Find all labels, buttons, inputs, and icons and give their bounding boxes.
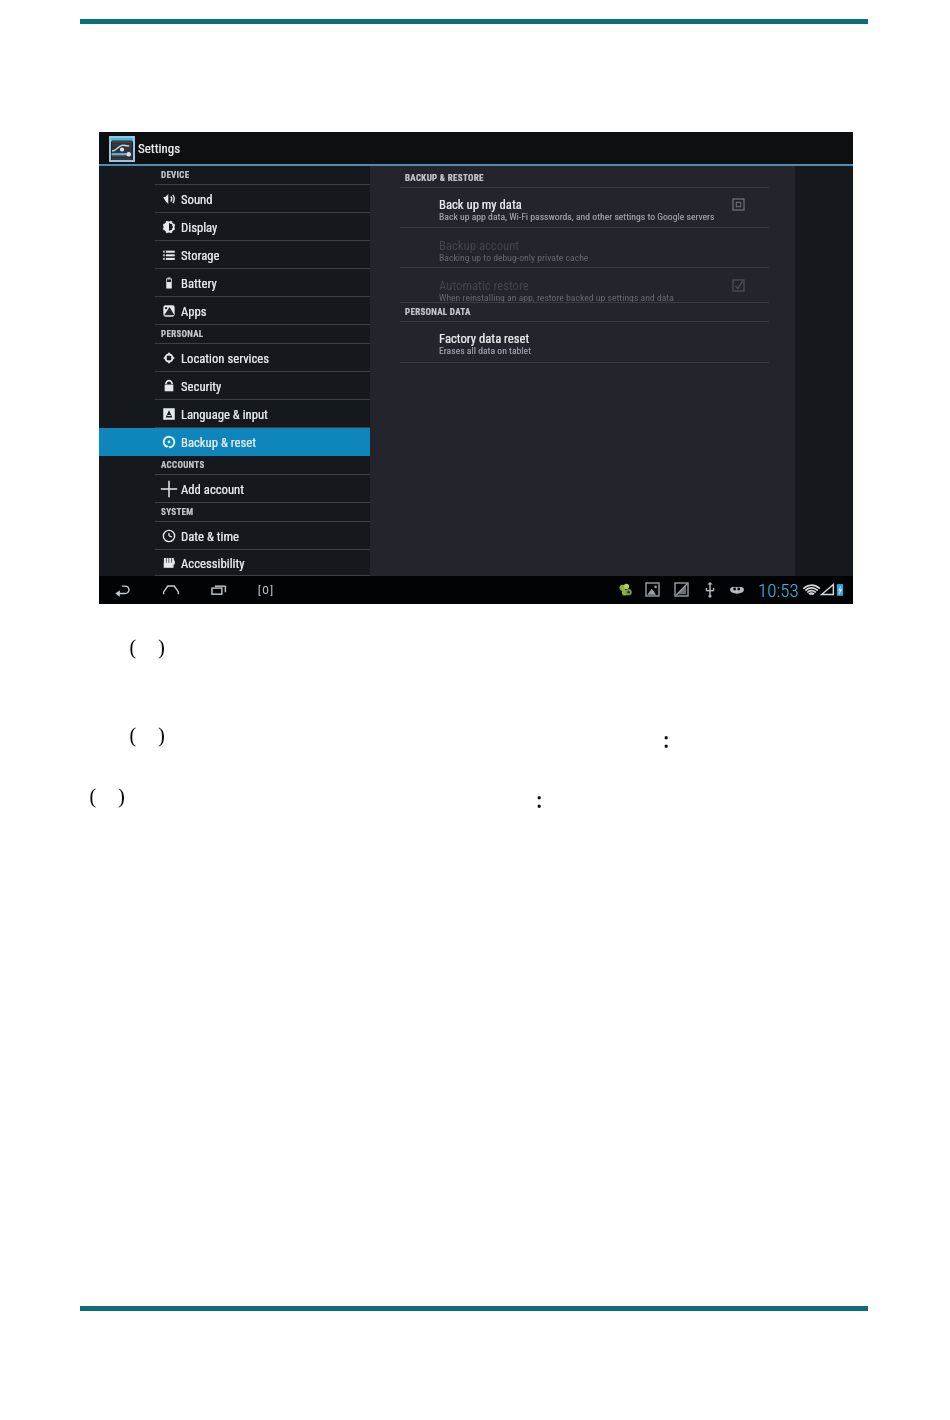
staticText: : [536,786,543,815]
staticText: Backup & reset [181,435,256,450]
button[interactable]: Back up my data [400,187,769,228]
staticText: ( ) [129,634,166,663]
staticText: Automatic restore [439,278,529,293]
staticText: ACCOUNTS [161,460,205,471]
staticText: Backing up to debug-only private cache [439,252,589,263]
button[interactable]: Language & input [99,400,370,428]
staticText: Accessibility [181,556,245,571]
staticText: Erases all data on tablet [439,345,531,356]
staticText: BACKUP & RESTORE [405,173,484,184]
button[interactable]: Date & time [99,522,370,550]
button[interactable]: Home [161,580,181,600]
button[interactable]: Battery [99,269,370,297]
staticText: Back up app data, Wi-Fi passwords, and o… [439,211,715,222]
button[interactable]: Location services [99,344,370,372]
staticText: Add account [181,482,245,497]
staticText: Storage [181,248,220,263]
staticText: PERSONAL [161,329,204,340]
button[interactable]: Automatic restore [733,280,744,291]
staticText: Language & input [181,407,268,422]
button[interactable]: Backup & reset [99,428,370,456]
staticText: Date & time [181,529,239,544]
button[interactable]: Security [99,372,370,400]
staticText: Battery [181,276,217,291]
button[interactable]: Back up my data [733,199,744,210]
button[interactable]: Factory data reset [400,321,769,363]
staticText: [O] [258,584,275,597]
button[interactable]: Display [99,213,370,241]
staticText: Settings [138,141,181,156]
staticText: SYSTEM [161,507,194,518]
button[interactable]: Sound [99,185,370,213]
staticText: Security [181,379,222,394]
staticText: ( ) [89,783,126,812]
staticText: Sound [181,192,213,207]
button[interactable]: Back [113,580,133,600]
button[interactable]: Automatic restore [400,268,769,303]
staticText: Factory data reset [439,331,530,346]
button[interactable]: Backup account [400,228,769,268]
button[interactable]: Add account [99,475,370,503]
button[interactable]: Recent apps [209,580,229,600]
staticText: PERSONAL DATA [405,307,471,318]
staticText: : [663,726,670,755]
staticText: Apps [181,304,207,319]
staticText: Backup account [439,238,520,253]
button[interactable]: Accessibility [99,550,370,576]
staticText: DEVICE [161,170,190,181]
staticText: Location services [181,351,270,366]
staticText: ( ) [129,722,166,751]
button[interactable]: Storage [99,241,370,269]
staticText: 10:53 [758,579,799,601]
staticText: Display [181,220,218,235]
button[interactable]: Apps [99,297,370,325]
staticText: Back up my data [439,197,522,212]
staticText: When reinstalling an app, restore backed… [439,292,674,303]
